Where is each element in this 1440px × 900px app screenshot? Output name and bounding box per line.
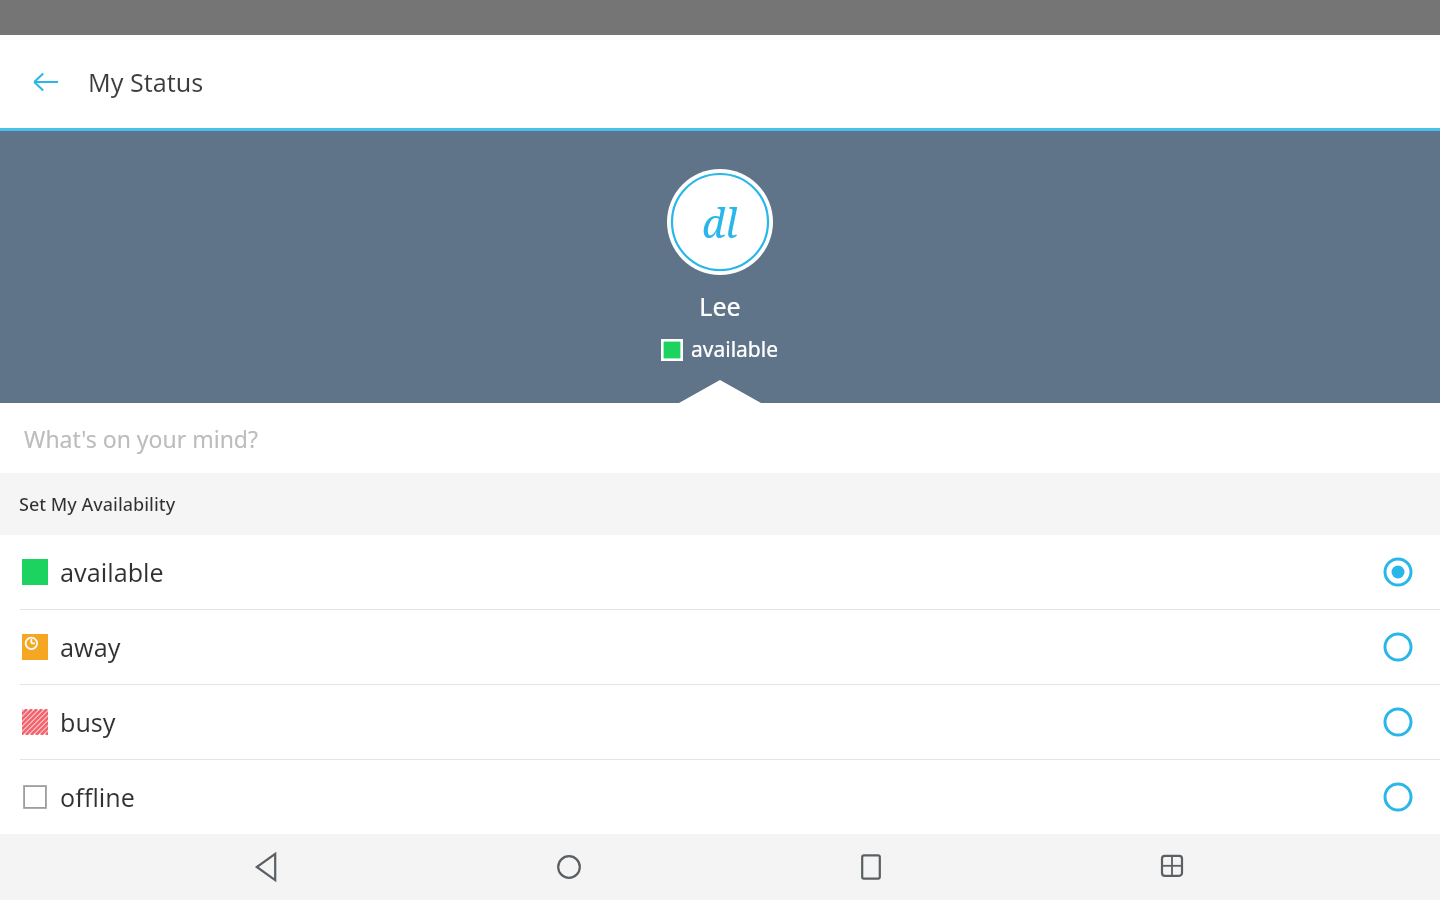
staticText: busy: [60, 705, 116, 739]
button[interactable]: away: [0, 610, 1440, 684]
button[interactable]: Profile photo: [667, 169, 773, 275]
button[interactable]: available: [0, 535, 1440, 609]
button[interactable]: Split screen: [1139, 834, 1205, 900]
staticText: away: [60, 630, 121, 664]
staticText: What's on your mind?: [24, 423, 258, 454]
staticText: Lee: [699, 289, 741, 323]
staticText: My Status: [88, 65, 204, 99]
button[interactable]: Back: [22, 58, 70, 106]
button[interactable]: busy: [0, 685, 1440, 759]
staticText: Set My Availability: [19, 492, 176, 517]
button[interactable]: offline: [0, 760, 1440, 834]
staticText: available: [60, 555, 164, 589]
button[interactable]: Recents: [838, 834, 904, 900]
button[interactable]: What's on your mind?: [0, 403, 1440, 473]
staticText: offline: [60, 780, 135, 814]
staticText: dl: [702, 195, 738, 249]
staticText: available: [691, 335, 779, 364]
button[interactable]: Home: [536, 834, 602, 900]
button[interactable]: Back: [235, 834, 301, 900]
